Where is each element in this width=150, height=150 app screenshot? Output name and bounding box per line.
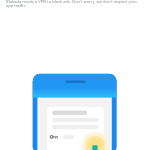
staticText: Blokada needs a VPN to block ads. Don't …: [6, 0, 142, 9]
